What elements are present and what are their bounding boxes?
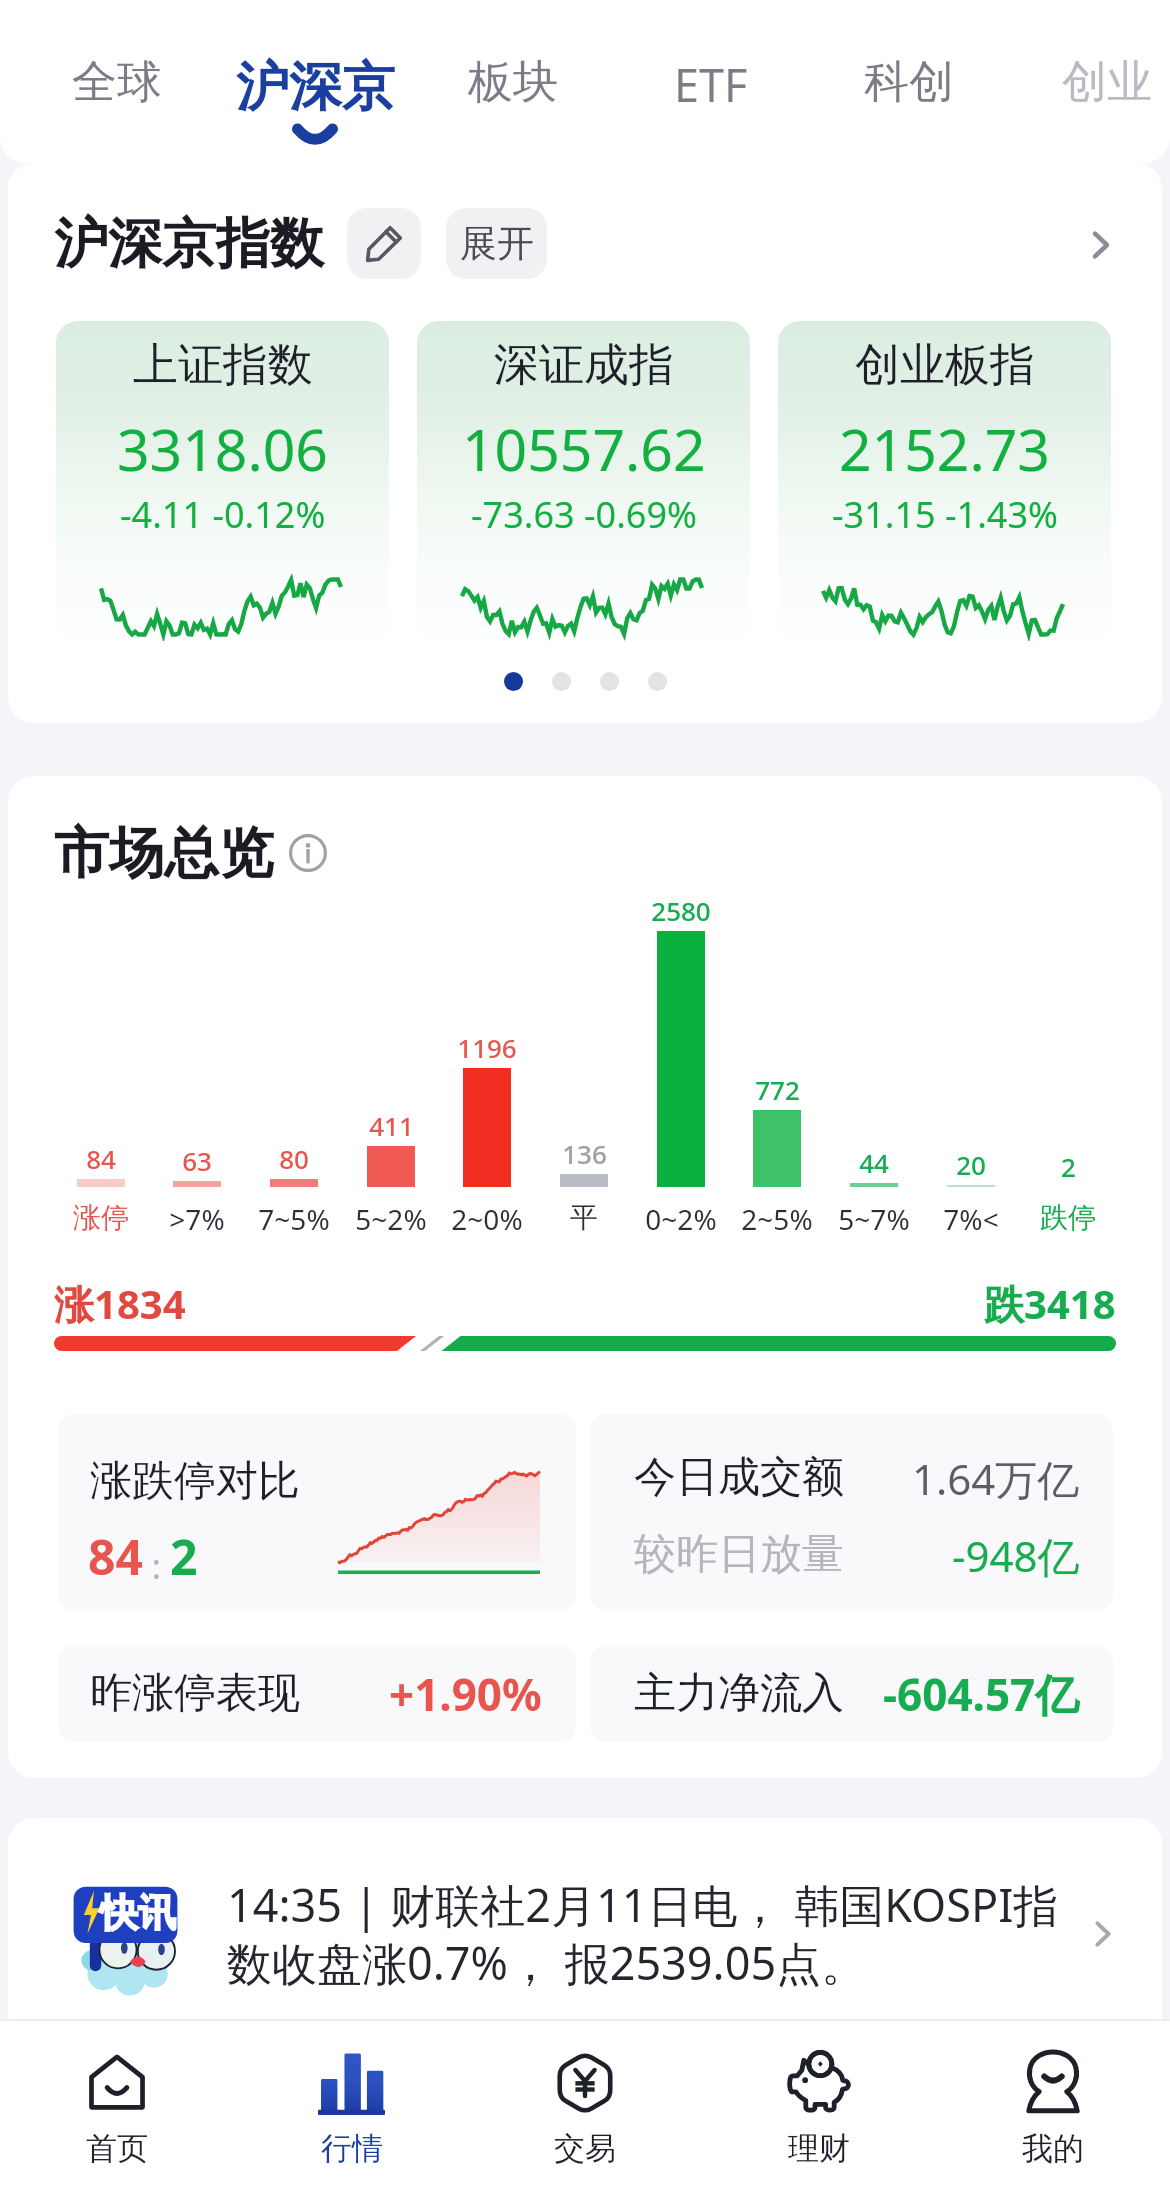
button[interactable]: 行情 <box>234 2020 468 2188</box>
staticText: : <box>143 1543 170 1589</box>
staticText: 板块 <box>468 54 558 111</box>
staticText: 创业板指 <box>855 337 1035 394</box>
button[interactable]: 上证指数 <box>56 321 389 641</box>
staticText: 63 <box>182 1143 212 1178</box>
button[interactable]: 查看详情 <box>1081 1912 1125 1956</box>
staticText: 昨涨停表现 <box>90 1667 300 1720</box>
staticText: 较昨日放量 <box>634 1528 844 1581</box>
staticText: 14:35 | 财联社2月11日电， 韩国KOSPI指 数收盘涨0.7%， 报2… <box>227 1874 1097 1993</box>
staticText: 1196 <box>457 1030 517 1065</box>
staticText: 沪深京 <box>236 54 395 121</box>
staticText: 科创 <box>864 54 954 111</box>
staticText: 快讯 <box>100 1889 176 1937</box>
staticText: 20 <box>956 1147 986 1182</box>
staticText: 5~7% <box>838 1200 910 1238</box>
staticText: 772 <box>755 1072 800 1107</box>
staticText: 涨跌停对比 <box>90 1455 300 1508</box>
button[interactable]: 沪深京 <box>225 40 405 150</box>
button[interactable]: 科创 <box>849 40 969 150</box>
button[interactable]: 更多 <box>1073 217 1129 273</box>
button[interactable]: 全球 <box>57 40 177 150</box>
staticText: 3318.06 <box>117 410 328 488</box>
button[interactable]: 涨跌停对比 <box>58 1414 576 1611</box>
staticText: -73.63 -0.69% <box>471 490 697 539</box>
button[interactable]: 交易 <box>468 2020 702 2188</box>
staticText: 涨1834 <box>54 1276 186 1331</box>
staticText: 跌3418 <box>984 1276 1116 1331</box>
staticText: ETF <box>674 54 748 115</box>
staticText: 1.64万亿 <box>912 1450 1080 1504</box>
button[interactable]: 今日成交额 <box>590 1414 1113 1611</box>
staticText: 理财 <box>788 2129 850 2168</box>
staticText: -4.11 -0.12% <box>120 490 326 539</box>
staticText: 我的 <box>1022 2129 1084 2168</box>
staticText: 5~2% <box>355 1200 427 1238</box>
staticText: 84 <box>86 1141 116 1176</box>
staticText: 10557.62 <box>462 410 706 488</box>
button[interactable]: 板块 <box>453 40 573 150</box>
button[interactable]: 展开 <box>446 208 547 279</box>
button[interactable]: 理财 <box>702 2020 936 2188</box>
button[interactable]: 我的 <box>936 2020 1170 2188</box>
staticText: 136 <box>562 1136 607 1171</box>
staticText: 2580 <box>651 893 711 928</box>
staticText: -604.57亿 <box>883 1664 1080 1724</box>
staticText: 主力净流入 <box>634 1667 844 1720</box>
staticText: +1.90% <box>389 1664 542 1724</box>
staticText: 44 <box>859 1145 889 1180</box>
staticText: 7~5% <box>258 1200 330 1238</box>
button[interactable]: 说明 <box>288 833 328 873</box>
staticText: -31.15 -1.43% <box>832 490 1058 539</box>
button[interactable]: 快讯 <box>8 1818 1162 2020</box>
button[interactable]: 首页 <box>0 2020 234 2188</box>
staticText: 上证指数 <box>133 337 313 394</box>
staticText: 创业 <box>1062 54 1152 111</box>
button[interactable]: 创业 <box>1047 40 1167 150</box>
staticText: 首页 <box>86 2129 148 2168</box>
button[interactable]: ETF <box>651 40 771 150</box>
staticText: 80 <box>279 1141 309 1176</box>
staticText: 2~0% <box>451 1200 523 1238</box>
staticText: 7%< <box>943 1200 999 1238</box>
staticText: 行情 <box>321 2129 383 2168</box>
staticText: >7% <box>169 1200 225 1238</box>
staticText: 411 <box>369 1108 414 1143</box>
staticText: 2 <box>1061 1149 1076 1184</box>
staticText: 今日成交额 <box>634 1451 844 1504</box>
staticText: 市场总览 <box>54 819 274 888</box>
staticText: 沪深京指数 <box>54 210 324 278</box>
staticText: 2~5% <box>741 1200 813 1238</box>
staticText: 深证成指 <box>494 337 674 394</box>
staticText: 2 <box>170 1524 198 1589</box>
button[interactable]: 编辑 <box>347 208 421 279</box>
staticText: 跌停 <box>1040 1200 1096 1235</box>
staticText: 平 <box>570 1200 598 1235</box>
button[interactable]: 昨涨停表现 <box>58 1645 576 1742</box>
staticText: 交易 <box>554 2129 616 2168</box>
staticText: 0~2% <box>645 1200 717 1238</box>
staticText: 涨停 <box>73 1200 129 1235</box>
staticText: 全球 <box>72 54 162 111</box>
staticText: 展开 <box>460 220 534 267</box>
button[interactable]: 深证成指 <box>417 321 750 641</box>
button[interactable]: 创业板指 <box>778 321 1111 641</box>
staticText: 2152.73 <box>839 410 1050 488</box>
button[interactable]: 主力净流入 <box>590 1645 1113 1742</box>
staticText: 84 <box>88 1524 143 1589</box>
staticText: -948亿 <box>952 1527 1080 1581</box>
